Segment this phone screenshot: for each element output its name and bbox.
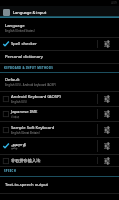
button[interactable]: Text-to-speech output <box>0 177 119 193</box>
button[interactable]: Settings <box>98 107 119 121</box>
button[interactable]: அகராதி <box>0 138 119 154</box>
staticText: Japanese IME <box>11 109 38 115</box>
button[interactable]: Settings <box>98 155 119 166</box>
staticText: Sample Soft Keyboard <box>11 125 55 131</box>
button[interactable]: Spell checker <box>0 38 119 50</box>
staticText: Android Keyboard (AOSP) <box>11 94 61 100</box>
button[interactable]: Japanese IME <box>0 107 119 121</box>
staticText: SPEECH <box>4 169 17 173</box>
staticText: Personal dictionary <box>5 54 43 60</box>
staticText: தமிழ் <box>11 147 18 150</box>
button[interactable]: Android Keyboard (AOSP) <box>0 92 119 106</box>
staticText: English (US) <box>11 100 27 104</box>
button[interactable]: Default <box>0 73 119 91</box>
button[interactable]: Settings <box>98 92 119 106</box>
button[interactable]: Personal dictionary <box>0 51 119 63</box>
button[interactable]: 谷歌拼音输入法 <box>0 155 119 166</box>
button[interactable]: Settings <box>98 138 119 154</box>
button[interactable]: Settings <box>98 38 119 50</box>
staticText: KEYBOARD & INPUT METHODS <box>4 66 54 70</box>
staticText: 谷歌拼音输入法 <box>11 158 41 163</box>
button[interactable]: Up <box>0 6 13 18</box>
staticText: Language & input <box>13 10 47 15</box>
staticText: 4:09 <box>111 1 117 5</box>
button[interactable]: Sample Soft Keyboard <box>0 122 119 137</box>
staticText: Spell checker <box>11 41 37 47</box>
button[interactable]: Settings <box>98 122 119 137</box>
staticText: அகராதி <box>11 143 26 147</box>
staticText: English (United States) <box>5 29 35 33</box>
staticText: English (US) - Android keyboard (AOSP) <box>5 83 56 87</box>
button[interactable]: Language <box>0 18 119 37</box>
staticText: Default <box>5 77 20 83</box>
staticText: 日本語 <box>11 115 20 119</box>
staticText: Text-to-speech output <box>5 182 49 188</box>
staticText: Language <box>5 23 25 29</box>
staticText: English (Great Britain) <box>11 131 40 135</box>
